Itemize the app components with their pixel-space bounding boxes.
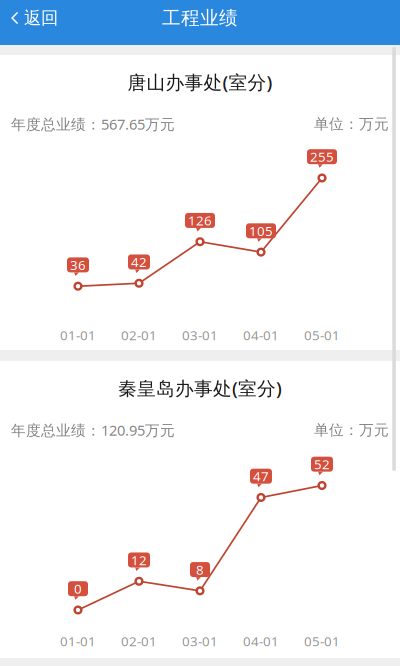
staticText: 唐山办事处(室分) <box>127 70 272 94</box>
staticText: 02-01 <box>121 326 157 344</box>
staticText: 52 <box>314 455 330 473</box>
staticText: 05-01 <box>304 326 340 344</box>
staticText: 01-01 <box>60 632 96 650</box>
staticText: 返回 <box>24 7 58 29</box>
staticText: 255 <box>310 148 334 165</box>
staticText: 秦皇岛办事处(室分) <box>118 376 282 400</box>
staticText: 36 <box>70 256 86 274</box>
staticText: 04-01 <box>243 326 279 344</box>
staticText: 02-01 <box>121 632 157 650</box>
staticText: 05-01 <box>304 632 340 650</box>
staticText: 工程业绩 <box>162 6 238 29</box>
staticText: 105 <box>249 222 273 240</box>
staticText: 单位：万元 <box>314 421 389 439</box>
staticText: 126 <box>188 212 212 229</box>
staticText: 单位：万元 <box>314 115 389 133</box>
staticText: 03-01 <box>182 326 218 344</box>
button[interactable]: 返回 <box>0 0 67 36</box>
staticText: 47 <box>253 467 269 485</box>
staticText: 01-01 <box>60 326 96 344</box>
staticText: 8 <box>196 561 204 578</box>
staticText: 03-01 <box>182 632 218 650</box>
staticText: 年度总业绩：120.95万元 <box>11 420 175 440</box>
staticText: 0 <box>74 580 82 597</box>
staticText: 年度总业绩：567.65万元 <box>11 114 175 134</box>
staticText: 04-01 <box>243 632 279 650</box>
staticText: 42 <box>131 253 147 271</box>
staticText: 12 <box>131 551 147 569</box>
